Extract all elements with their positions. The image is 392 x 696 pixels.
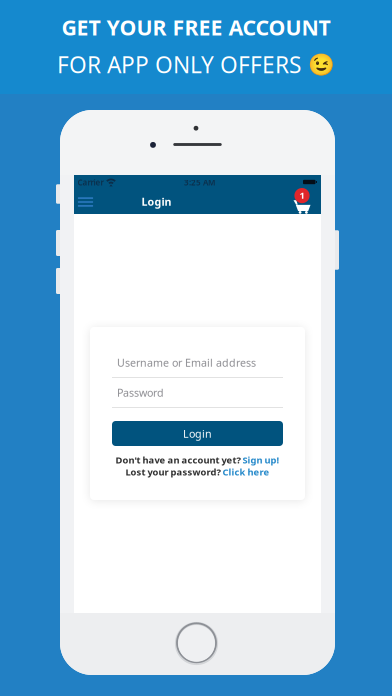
button[interactable]: Click here — [222, 466, 269, 478]
staticText: Lost your password? — [125, 466, 222, 478]
staticText: Click here — [222, 466, 269, 478]
staticText: 3:25 AM — [184, 177, 215, 188]
staticText: Login — [141, 194, 171, 209]
staticText: FOR APP ONLY OFFERS — [57, 49, 301, 79]
staticText: Password — [117, 385, 164, 400]
staticText: Don't have an account yet? — [115, 454, 242, 466]
staticText: Carrier — [77, 177, 103, 188]
button[interactable]: Login — [112, 421, 283, 446]
button[interactable]: Menu — [72, 190, 98, 214]
staticText: 1 — [299, 189, 304, 201]
staticText: GET YOUR FREE ACCOUNT — [61, 13, 330, 41]
staticText: 😉 — [308, 52, 335, 77]
staticText: Sign up! — [242, 454, 279, 466]
staticText: Username or Email address — [117, 355, 256, 370]
button[interactable]: Sign up! — [242, 454, 279, 466]
staticText: Login — [183, 426, 212, 441]
button[interactable]: Cart, 1 item — [289, 190, 315, 214]
